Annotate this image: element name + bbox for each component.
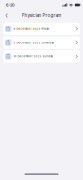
staticText: 5 December 2023 Someday — [13, 41, 53, 44]
staticText: 9 December 2023 Friday — [13, 27, 48, 30]
button[interactable]: 5 December 2023 Someday — [3, 36, 80, 49]
staticText: 6:20 — [6, 3, 15, 7]
staticText: Physician Program — [21, 13, 61, 18]
button[interactable]: 9 December 2023 Friday — [3, 23, 80, 35]
button[interactable]: Back — [0, 10, 11, 21]
button[interactable]: 10 December 2023 Sunday — [3, 50, 80, 63]
staticText: 10 December 2023 Sunday — [13, 55, 52, 58]
